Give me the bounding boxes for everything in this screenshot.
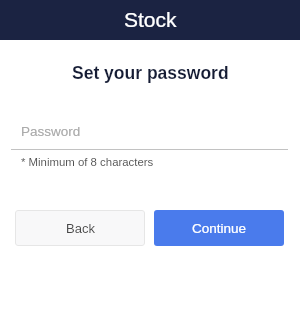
button[interactable]: Password input field xyxy=(11,114,288,150)
staticText: Stock xyxy=(124,8,177,31)
staticText: Password xyxy=(21,124,81,139)
staticText: * Minimum of 8 characters xyxy=(21,156,154,169)
staticText: Set your password xyxy=(72,63,229,83)
staticText: Back xyxy=(66,221,95,236)
button[interactable]: Back xyxy=(15,210,145,246)
button[interactable]: Continue xyxy=(154,210,284,246)
staticText: Continue xyxy=(192,221,247,236)
